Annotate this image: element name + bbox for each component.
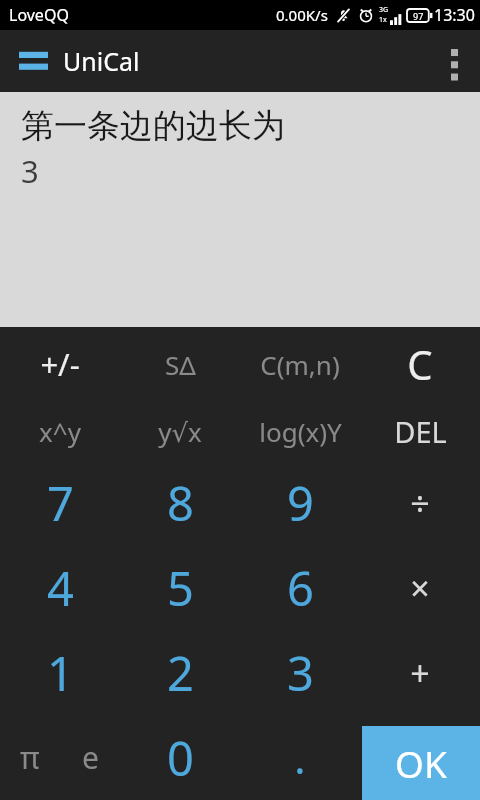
staticText: 0.00K/s [276,5,328,25]
staticText: + [410,650,430,696]
staticText: OK [395,738,447,788]
button[interactable]: More options [428,30,480,92]
staticText: log(x)Y [259,414,342,449]
staticText: 3G [379,5,389,15]
button[interactable]: 6 [240,545,360,630]
staticText: ÷ [410,480,430,526]
staticText: 3 [21,150,39,192]
button[interactable]: 8 [120,461,240,545]
staticText: DEL [394,412,447,451]
button[interactable]: 2 [120,630,240,715]
staticText: 1x [379,15,387,25]
staticText: 3 [287,641,314,705]
staticText: 1 [47,641,74,705]
staticText: 97 [413,10,424,22]
staticText: 0 [167,726,194,790]
button[interactable]: π [0,715,60,800]
staticText: 7 [47,471,74,535]
staticText: y√x [158,414,202,449]
button[interactable]: 7 [0,461,120,545]
staticText: C(m,n) [260,347,340,382]
button[interactable]: Navigation menu [0,30,154,92]
button[interactable]: 4 [0,545,120,630]
button[interactable]: DEL [360,401,480,461]
button[interactable]: +/- [0,327,120,401]
staticText: 8 [167,471,194,535]
staticText: UniCal [63,44,140,78]
staticText: 5 [167,556,194,620]
button[interactable]: y√x [120,401,240,461]
button[interactable]: 1 [0,630,120,715]
button[interactable]: C [360,327,480,401]
staticText: C [407,337,433,391]
button[interactable]: x^y [0,401,120,461]
staticText: 4 [47,556,74,620]
staticText: x^y [39,414,81,449]
button[interactable]: 0 [120,715,240,800]
button[interactable]: e [60,715,120,800]
staticText: 2 [167,641,194,705]
button[interactable]: 3 [240,630,360,715]
staticText: e [82,737,99,778]
staticText: . [294,729,306,786]
staticText: × [410,565,430,611]
staticText: LoveQQ [9,4,69,26]
other: Navigation menu [19,51,48,71]
button[interactable]: SΔ [120,327,240,401]
staticText: π [20,737,40,778]
button[interactable]: C(m,n) [240,327,360,401]
staticText: 第一条边的边长为 [21,105,285,147]
button[interactable]: log(x)Y [240,401,360,461]
button[interactable]: ÷ [360,461,480,545]
button[interactable]: × [360,545,480,630]
staticText: 6 [287,556,314,620]
button[interactable]: 9 [240,461,360,545]
button[interactable]: . [240,715,360,800]
staticText: 13:30 [434,4,475,26]
button[interactable]: + [360,630,480,715]
staticText: SΔ [165,347,196,382]
button[interactable]: OK [362,726,480,800]
staticText: +/- [40,343,80,385]
staticText: 9 [287,471,314,535]
button[interactable]: 5 [120,545,240,630]
